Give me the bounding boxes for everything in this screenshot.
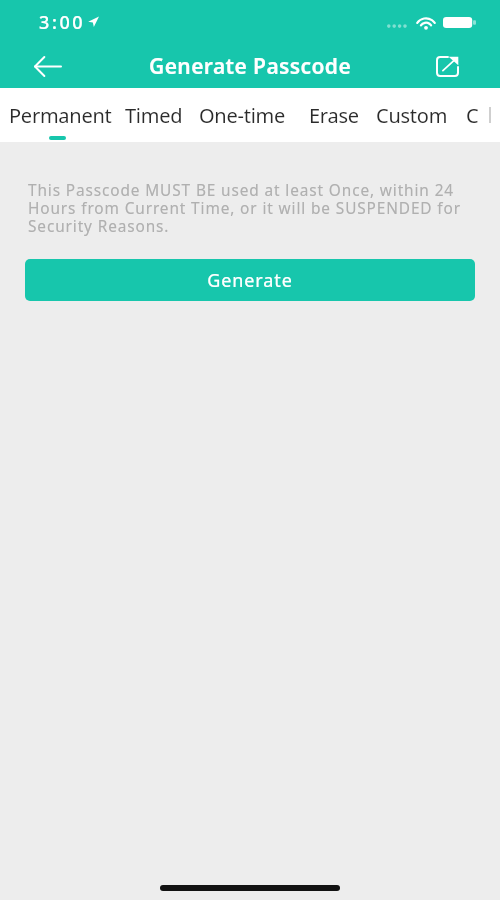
button[interactable]: Generate <box>25 259 475 301</box>
staticText: Generate <box>207 268 293 293</box>
staticText: Erase <box>309 102 359 129</box>
staticText: This Passcode MUST BE used at least Once… <box>28 180 478 236</box>
button[interactable]: Erase <box>300 88 368 142</box>
staticText: Custom <box>376 102 448 129</box>
staticText: Generate Passcode <box>149 52 352 81</box>
button[interactable]: One-time <box>190 88 295 142</box>
button[interactable]: Back <box>27 45 69 87</box>
staticText: Timed <box>125 102 183 129</box>
staticText: Permanent <box>9 102 112 129</box>
button[interactable]: Timed <box>116 88 192 142</box>
button[interactable]: Custom <box>367 88 457 142</box>
button[interactable]: C <box>457 88 488 142</box>
staticText: 3:00 <box>39 10 86 35</box>
button[interactable]: Permanent <box>0 88 121 142</box>
button[interactable]: Open in new window <box>428 47 466 85</box>
staticText: C <box>466 102 479 129</box>
staticText: One-time <box>199 102 286 129</box>
